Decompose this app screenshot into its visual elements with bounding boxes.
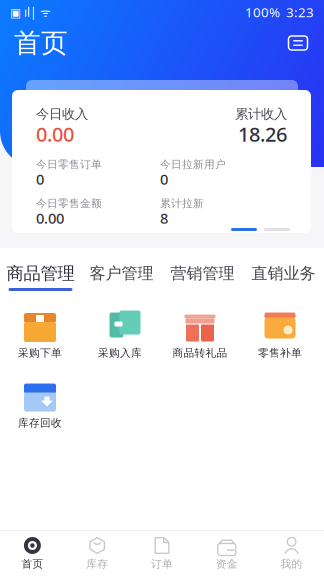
staticText: 首页 <box>14 27 68 59</box>
button[interactable]: 商品转礼品 <box>160 299 240 369</box>
button[interactable]: 资金 <box>194 533 259 573</box>
staticText: 今日收入 <box>36 106 88 122</box>
staticText: 累计收入 <box>235 106 287 122</box>
button[interactable]: 我的 <box>259 533 324 573</box>
staticText: 0 <box>160 169 168 189</box>
button[interactable]: 采购下单 <box>0 299 80 369</box>
staticText: 今日拉新用户 <box>160 158 226 171</box>
staticText: 库存回收 <box>18 416 62 429</box>
button[interactable]: 营销管理 <box>162 265 243 291</box>
staticText: 采购下单 <box>18 346 62 359</box>
staticText: 我的 <box>281 557 303 570</box>
button[interactable]: 订单 <box>130 533 194 573</box>
staticText: 0 <box>36 169 44 189</box>
staticText: 首页 <box>21 557 43 570</box>
button[interactable]: 库存回收 <box>0 369 80 439</box>
staticText: 订单 <box>151 557 173 570</box>
staticText: 客户管理 <box>89 264 153 283</box>
staticText: 100% 3:23 <box>245 3 314 21</box>
staticText: ▣ ıl| ᯤ <box>10 4 51 20</box>
staticText: 商品转礼品 <box>172 346 227 359</box>
staticText: 0.00 <box>36 208 64 228</box>
staticText: 直销业务 <box>251 264 315 283</box>
staticText: 采购入库 <box>98 346 142 359</box>
staticText: 今日零售订单 <box>36 158 102 171</box>
staticText: 营销管理 <box>170 264 234 283</box>
staticText: 18.26 <box>238 121 287 147</box>
staticText: 0.00 <box>36 121 74 147</box>
button[interactable]: 客户管理 <box>81 265 162 291</box>
staticText: 商品管理 <box>6 263 74 284</box>
button[interactable]: 商品管理 <box>0 265 81 291</box>
staticText: 资金 <box>216 557 238 570</box>
staticText: 累计拉新 <box>160 197 204 210</box>
staticText: 今日零售金额 <box>36 197 102 210</box>
button[interactable]: 零售补单 <box>240 299 320 369</box>
button[interactable]: 首页 <box>0 533 65 573</box>
staticText: 库存 <box>86 557 108 570</box>
staticText: 零售补单 <box>258 346 302 359</box>
button[interactable]: 消息 <box>286 33 310 53</box>
button[interactable]: 库存 <box>65 533 130 573</box>
staticText: 8 <box>160 208 168 228</box>
button[interactable]: 直销业务 <box>243 265 324 291</box>
button[interactable]: 采购入库 <box>80 299 160 369</box>
